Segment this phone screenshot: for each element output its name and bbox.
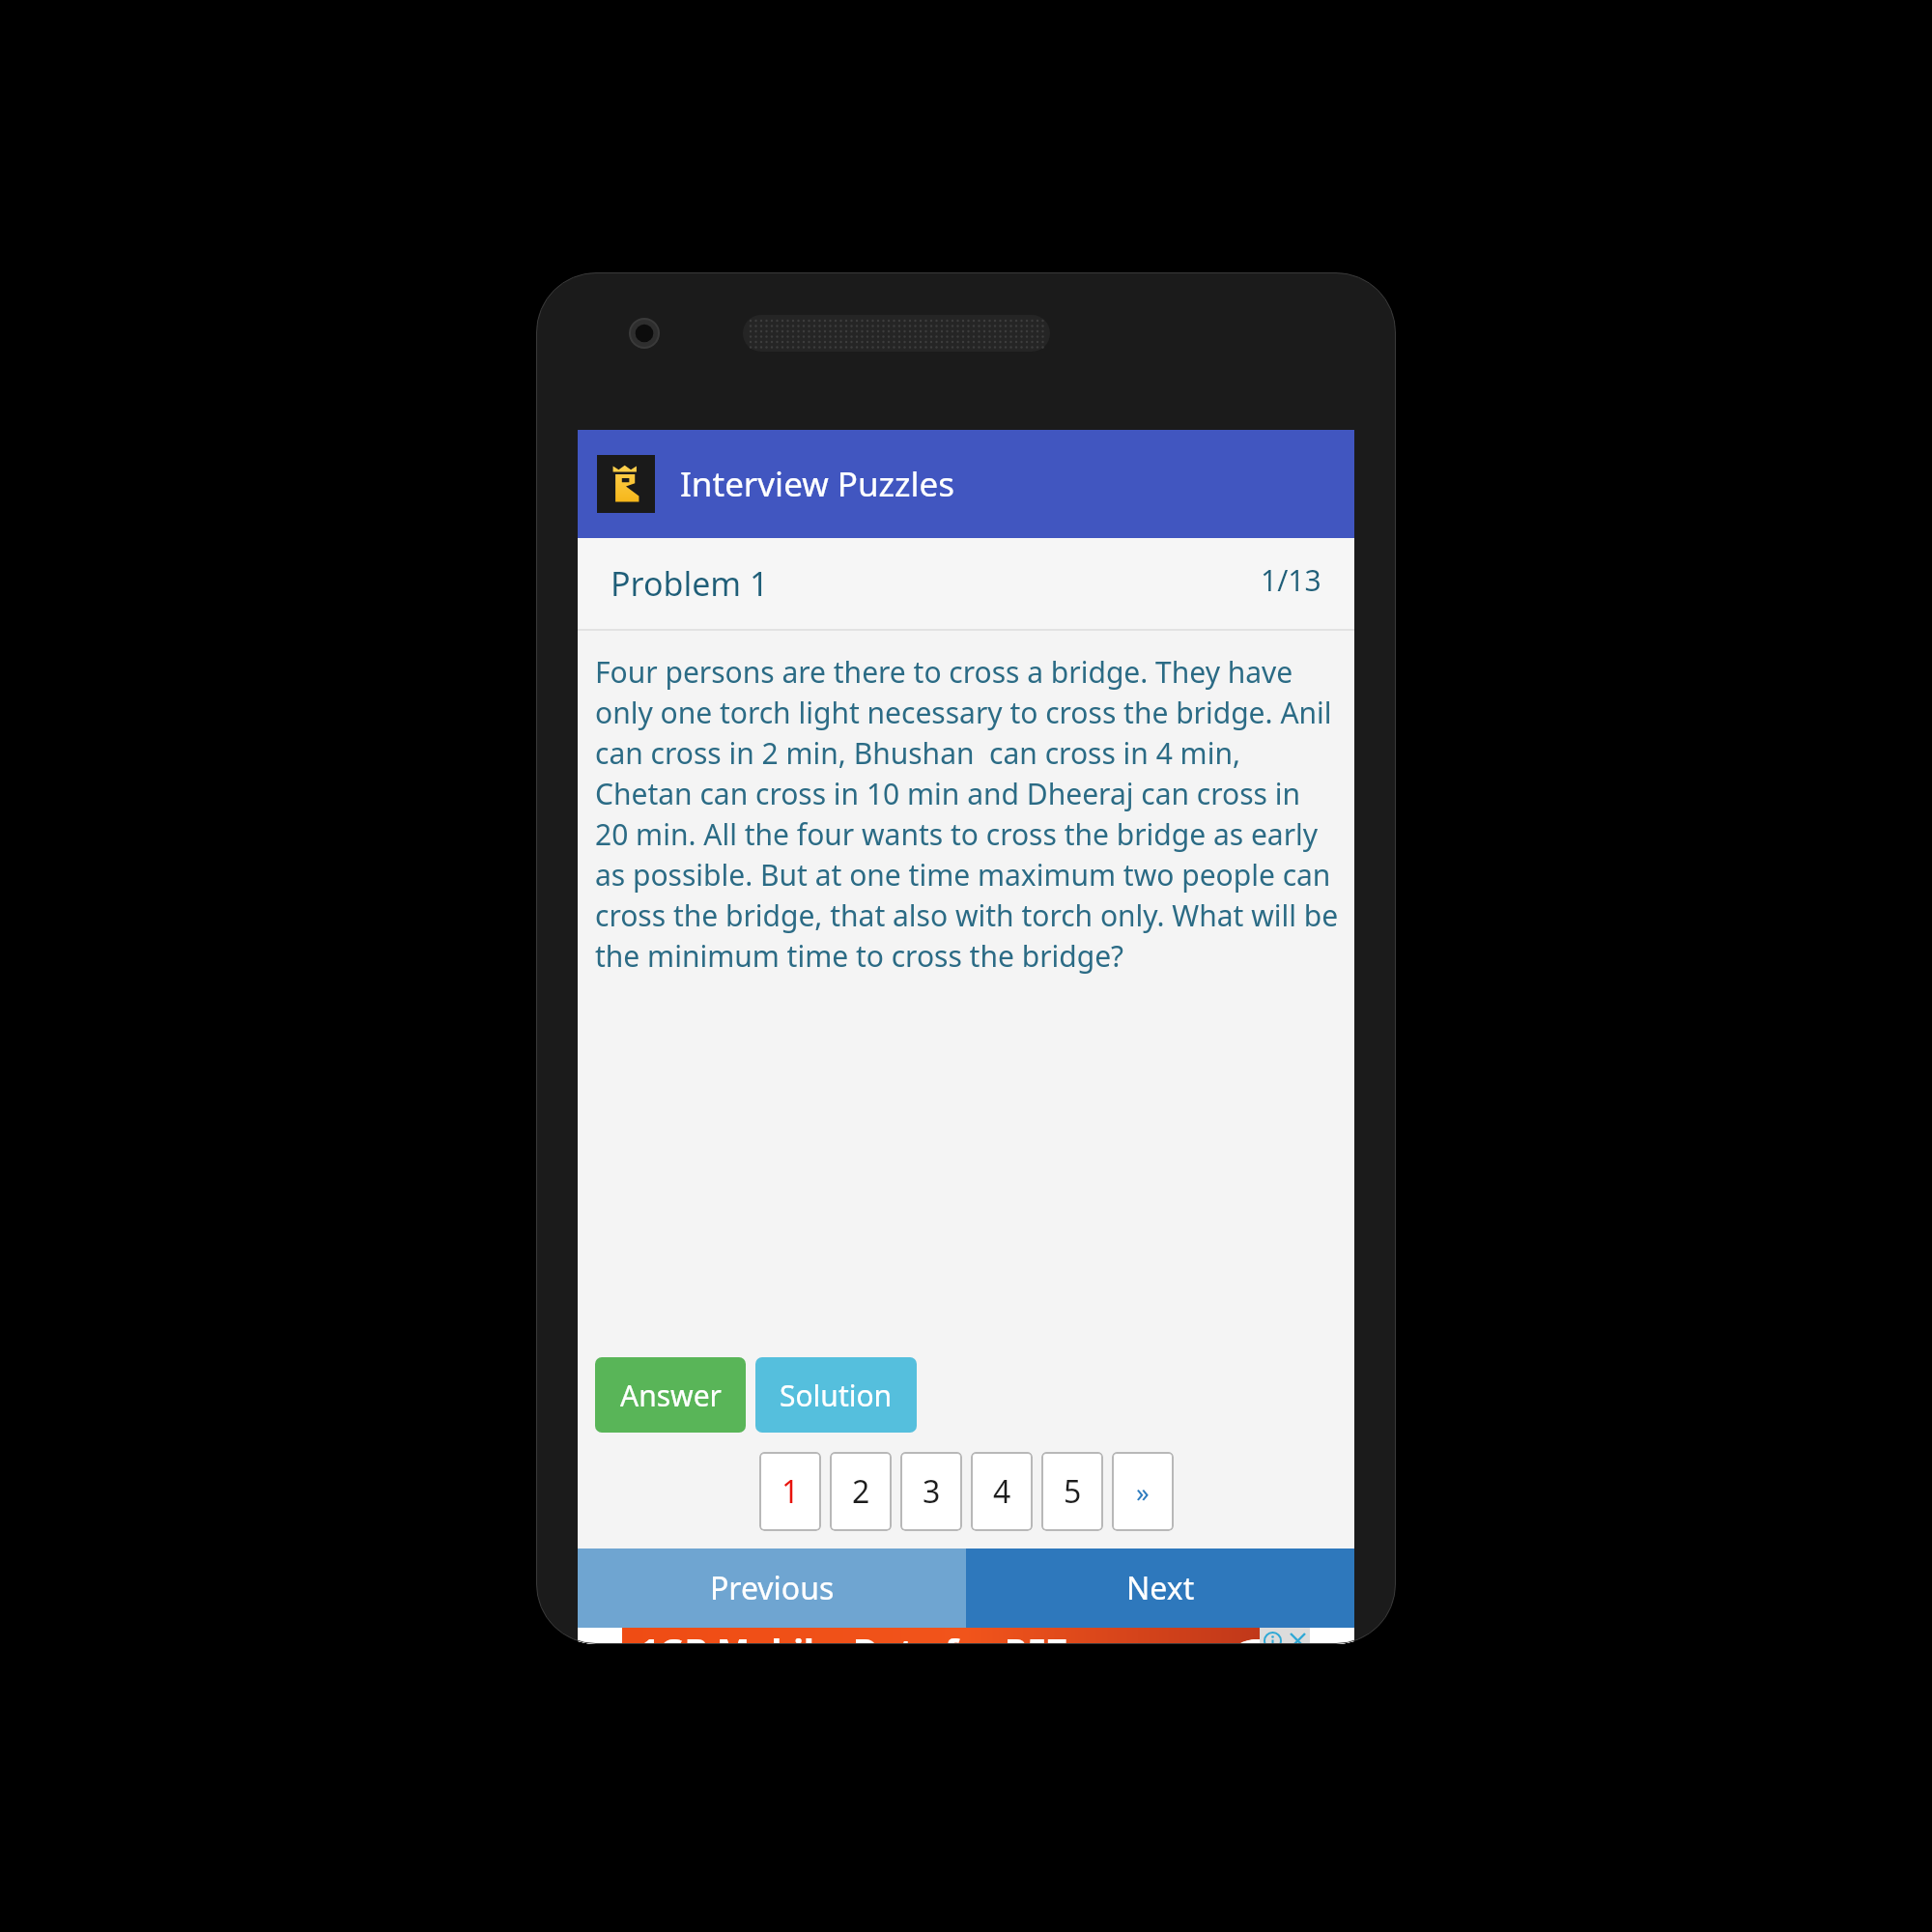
button[interactable]: Solution xyxy=(755,1357,917,1433)
staticText: 1 xyxy=(781,1470,800,1513)
staticText: Next xyxy=(1126,1567,1195,1609)
staticText: Solution xyxy=(780,1376,893,1415)
staticText: 3 xyxy=(923,1470,941,1513)
button[interactable]: Answer xyxy=(595,1357,746,1433)
staticText: 5 xyxy=(1064,1470,1082,1513)
button[interactable]: 5 xyxy=(1041,1452,1103,1531)
staticText: 2 xyxy=(852,1470,870,1513)
staticText: 4 xyxy=(993,1470,1011,1513)
staticText: Answer xyxy=(620,1376,722,1415)
staticText: Problem 1 xyxy=(611,561,769,606)
other: App icon xyxy=(597,455,655,513)
button[interactable]: Next xyxy=(966,1548,1354,1628)
button[interactable]: 3 xyxy=(900,1452,962,1531)
staticText: Four persons are there to cross a bridge… xyxy=(595,652,1339,976)
staticText: Previous xyxy=(710,1567,835,1609)
other: Ad info xyxy=(1260,1628,1285,1644)
staticText: Mobile Data xyxy=(717,1628,945,1644)
button[interactable]: Previous xyxy=(578,1548,966,1628)
button[interactable]: 1 xyxy=(759,1452,821,1531)
staticText: Interview Puzzles xyxy=(680,461,955,507)
other: Close ad xyxy=(1285,1628,1310,1644)
staticText: 1GB xyxy=(639,1628,717,1644)
staticText: for R57 xyxy=(945,1628,1067,1644)
button[interactable]: 2 xyxy=(830,1452,892,1531)
button[interactable]: 1GB xyxy=(578,1628,1354,1644)
staticText: 1/13 xyxy=(1261,560,1321,600)
button[interactable]: 4 xyxy=(971,1452,1033,1531)
button[interactable]: » xyxy=(1112,1452,1174,1531)
staticText: » xyxy=(1136,1474,1150,1510)
